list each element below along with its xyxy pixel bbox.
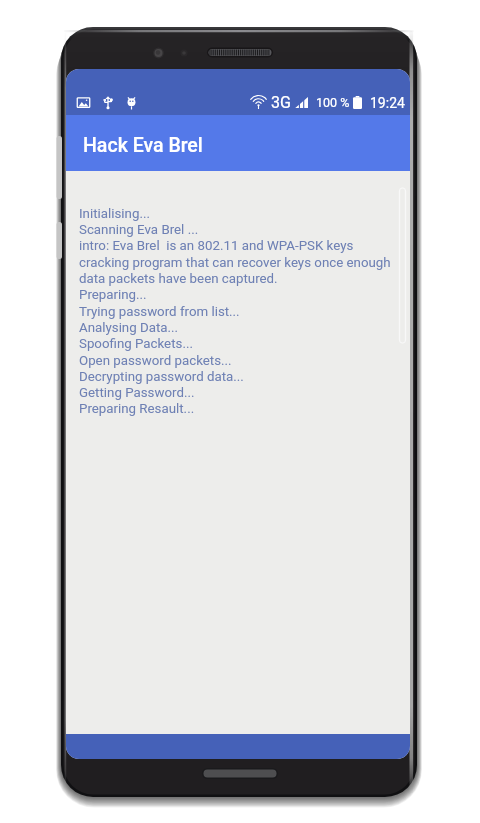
- other: Battery: [353, 96, 362, 109]
- staticText: Decrypting password data...: [79, 369, 244, 385]
- other: Screenshot: [77, 96, 90, 109]
- staticText: Initialising...: [79, 206, 150, 222]
- other: USB debugging: [126, 96, 137, 110]
- other: Mobile signal: [295, 97, 308, 108]
- staticText: Analysing Data...: [79, 320, 179, 336]
- staticText: Hack Eva Brel: [83, 134, 203, 157]
- staticText: Spoofing Packets...: [79, 336, 193, 352]
- staticText: 100 %: [316, 95, 350, 110]
- staticText: 19:24: [370, 95, 405, 111]
- staticText: cracking program that can recover keys o…: [79, 255, 391, 271]
- staticText: Preparing...: [79, 287, 147, 303]
- staticText: Scanning Eva Brel ...: [79, 222, 199, 238]
- staticText: Open password packets...: [79, 353, 232, 369]
- staticText: data packets have been captured.: [79, 271, 278, 287]
- staticText: Preparing Resault...: [79, 401, 195, 417]
- button[interactable]: Hack Eva Brel: [66, 115, 410, 171]
- staticText: intro: Eva Brel is an 802.11 and WPA-PSK…: [79, 238, 354, 254]
- staticText: Getting Password...: [79, 385, 195, 401]
- other: Wi-Fi: [252, 96, 265, 109]
- other: USB connected: [103, 96, 113, 110]
- staticText: Trying password from list...: [79, 304, 240, 320]
- staticText: 3G: [271, 93, 291, 112]
